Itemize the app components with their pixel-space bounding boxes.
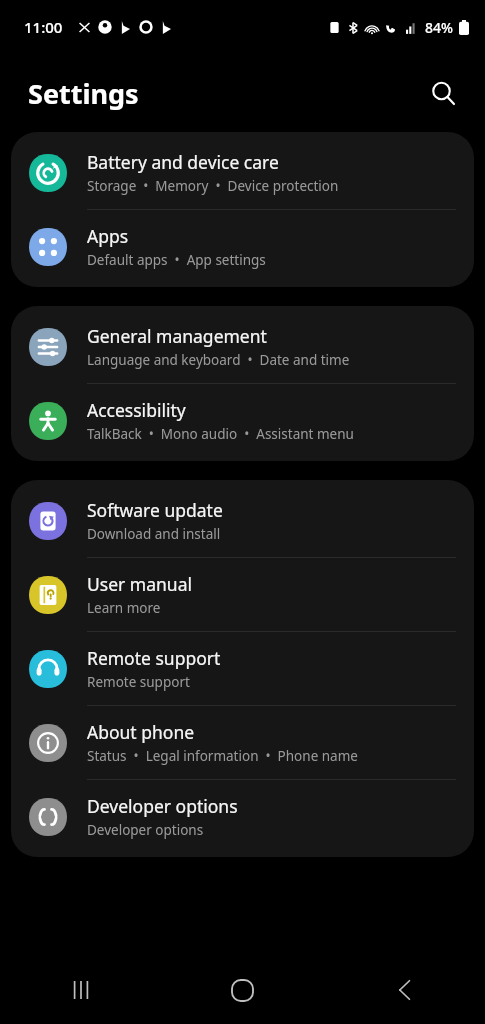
staticText: Developer options bbox=[87, 821, 204, 839]
button[interactable]: Search bbox=[423, 73, 463, 113]
button[interactable]: Recent apps bbox=[0, 956, 161, 1024]
button[interactable]: Developer options bbox=[11, 780, 474, 853]
staticText: Apps bbox=[87, 224, 129, 248]
staticText: Learn more bbox=[87, 599, 161, 617]
staticText: About phone bbox=[87, 720, 195, 744]
staticText: Download and install bbox=[87, 525, 221, 543]
staticText: 11:00 bbox=[24, 17, 63, 37]
button[interactable]: Back bbox=[323, 956, 485, 1024]
staticText: TalkBack • Mono audio • Assistant menu bbox=[87, 425, 354, 443]
button[interactable]: Home bbox=[161, 956, 323, 1024]
staticText: Default apps • App settings bbox=[87, 251, 266, 269]
staticText: User manual bbox=[87, 572, 192, 596]
button[interactable]: General management bbox=[11, 310, 474, 383]
staticText: Developer options bbox=[87, 794, 238, 818]
staticText: 84% bbox=[425, 18, 453, 37]
button[interactable]: Software update bbox=[11, 484, 474, 557]
button[interactable]: User manual bbox=[11, 558, 474, 631]
staticText: Remote support bbox=[87, 646, 221, 670]
staticText: Remote support bbox=[87, 673, 190, 691]
button[interactable]: Remote support bbox=[11, 632, 474, 705]
staticText: Software update bbox=[87, 498, 223, 522]
staticText: General management bbox=[87, 324, 267, 348]
button[interactable]: Apps bbox=[11, 210, 474, 283]
staticText: Settings bbox=[28, 75, 139, 112]
staticText: Status • Legal information • Phone name bbox=[87, 747, 358, 765]
staticText: Accessibility bbox=[87, 398, 186, 422]
staticText: Language and keyboard • Date and time bbox=[87, 351, 350, 369]
staticText: Battery and device care bbox=[87, 150, 279, 174]
button[interactable]: About phone bbox=[11, 706, 474, 779]
staticText: Storage • Memory • Device protection bbox=[87, 177, 339, 195]
button[interactable]: Accessibility bbox=[11, 384, 474, 457]
button[interactable]: Battery and device care bbox=[11, 136, 474, 209]
